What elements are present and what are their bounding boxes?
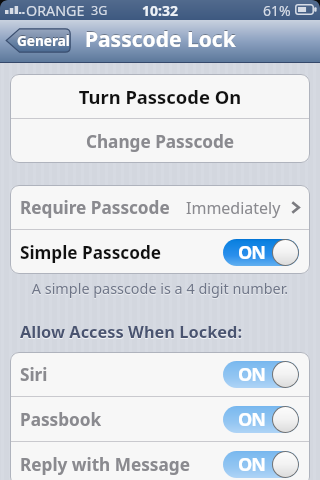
staticText: Change Passcode	[10, 130, 310, 153]
staticText: 10:32	[142, 1, 178, 20]
staticText: Reply with Message	[20, 453, 190, 476]
button[interactable]: Passbook	[10, 397, 310, 441]
staticText: Immediately	[186, 197, 281, 219]
staticText: ORANGE	[26, 1, 85, 20]
staticText: ON	[238, 452, 265, 477]
button[interactable]: On	[223, 451, 299, 478]
staticText: ON	[238, 240, 265, 265]
other: Signal strength	[5, 5, 24, 14]
staticText: Passcode Lock	[85, 25, 236, 54]
staticText: Simple Passcode	[20, 241, 162, 264]
staticText: ON	[238, 362, 265, 387]
button[interactable]: Turn Passcode On	[10, 74, 310, 118]
staticText: ON	[238, 407, 265, 432]
staticText: A simple passcode is a 4 digit number.	[0, 279, 320, 299]
staticText: Passbook	[20, 408, 102, 431]
button[interactable]: Reply with Message	[10, 442, 310, 480]
staticText: General	[17, 31, 70, 50]
other: Battery 61 percent	[295, 4, 318, 16]
button[interactable]: On	[223, 361, 299, 388]
staticText: Siri	[20, 363, 48, 386]
staticText: 61%	[263, 1, 291, 20]
button[interactable]: Siri	[10, 352, 310, 396]
button[interactable]: Change Passcode	[10, 119, 310, 163]
staticText: Allow Access When Locked:	[20, 320, 243, 342]
other: More	[291, 201, 300, 214]
staticText: Require Passcode	[20, 196, 170, 219]
button[interactable]: On	[223, 239, 299, 266]
staticText: Turn Passcode On	[10, 84, 310, 109]
button[interactable]: General	[5, 28, 71, 53]
button[interactable]: Require Passcode	[10, 185, 310, 229]
staticText: 3G	[91, 2, 108, 19]
button[interactable]: Simple Passcode	[10, 230, 310, 274]
button[interactable]: On	[223, 406, 299, 433]
